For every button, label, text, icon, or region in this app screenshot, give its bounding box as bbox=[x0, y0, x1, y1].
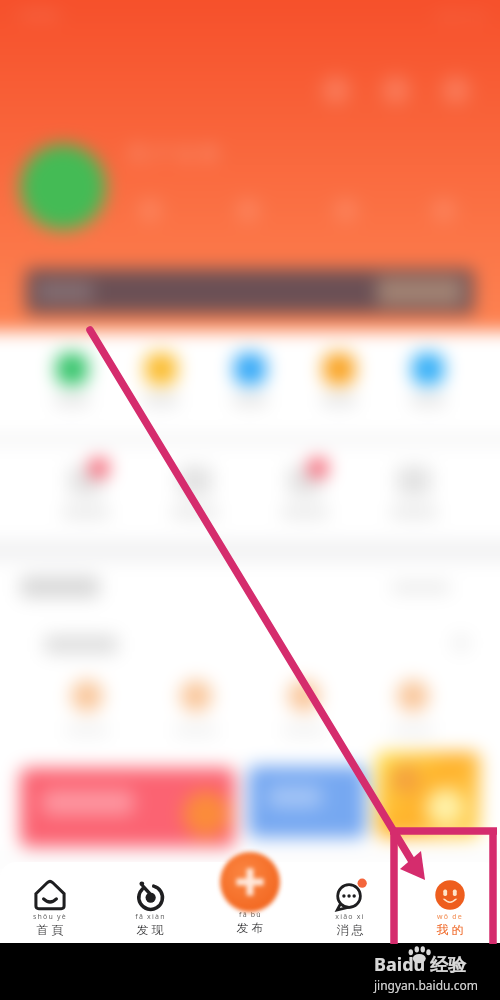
button[interactable] bbox=[282, 466, 328, 517]
button[interactable]: fā xiàn bbox=[100, 862, 200, 937]
staticText: jingyan.baidu.com bbox=[374, 977, 478, 993]
button[interactable] bbox=[55, 353, 89, 405]
staticText: 发现 bbox=[135, 922, 165, 937]
button[interactable] bbox=[283, 680, 325, 735]
button[interactable] bbox=[175, 680, 217, 735]
staticText: Baidu 经验 bbox=[374, 952, 466, 977]
button[interactable] bbox=[391, 466, 437, 517]
button[interactable]: fā bù bbox=[200, 862, 300, 935]
button[interactable]: 发布 bbox=[216, 848, 284, 916]
button[interactable] bbox=[63, 466, 109, 517]
button[interactable]: 头像 bbox=[20, 144, 106, 230]
staticText: shǒu yè bbox=[33, 912, 67, 922]
staticText: xiāo xi bbox=[335, 912, 365, 922]
button[interactable] bbox=[248, 766, 366, 838]
staticText: fā xiàn bbox=[135, 912, 166, 922]
button[interactable]: 设置 bbox=[382, 76, 410, 104]
button[interactable] bbox=[172, 466, 218, 517]
button[interactable]: wǒ de bbox=[400, 862, 500, 937]
button[interactable] bbox=[411, 353, 445, 405]
staticText: 我的 bbox=[435, 922, 465, 937]
button[interactable] bbox=[233, 353, 267, 405]
button[interactable] bbox=[144, 353, 178, 405]
button[interactable]: 设置 bbox=[442, 76, 470, 104]
staticText: 发布 bbox=[235, 920, 265, 935]
button[interactable] bbox=[392, 680, 434, 735]
button[interactable]: shǒu yè bbox=[0, 862, 100, 937]
button[interactable] bbox=[376, 752, 480, 838]
staticText: 首頁 bbox=[35, 922, 65, 937]
button[interactable] bbox=[322, 353, 356, 405]
button[interactable]: 设置 bbox=[322, 76, 350, 104]
button[interactable] bbox=[66, 680, 108, 735]
button[interactable] bbox=[37, 269, 463, 314]
button[interactable]: xiāo xi bbox=[300, 862, 400, 937]
staticText: 消息 bbox=[335, 922, 365, 937]
staticText: wǒ de bbox=[437, 912, 463, 922]
staticText: fā bù bbox=[239, 910, 262, 920]
button[interactable] bbox=[20, 768, 235, 847]
